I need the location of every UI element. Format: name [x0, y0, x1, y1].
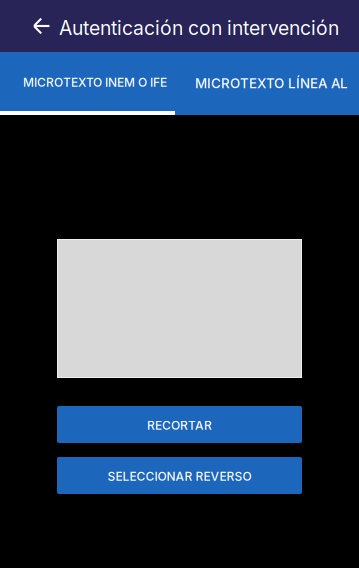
staticText: MICROTEXTO LÍNEA AL — [195, 75, 348, 91]
button[interactable]: Back — [0, 0, 59, 52]
button[interactable]: MICROTEXTO LÍNEA AL — [175, 52, 359, 115]
button[interactable]: RECORTAR — [57, 406, 302, 443]
button[interactable]: MICROTEXTO INEM O IFE — [0, 52, 175, 115]
button[interactable]: SELECCIONAR REVERSO — [57, 457, 302, 494]
staticText: SELECCIONAR REVERSO — [107, 469, 251, 484]
staticText: RECORTAR — [147, 418, 212, 433]
staticText: MICROTEXTO INEM O IFE — [23, 75, 167, 90]
staticText: Autenticación con intervención — [59, 16, 339, 40]
